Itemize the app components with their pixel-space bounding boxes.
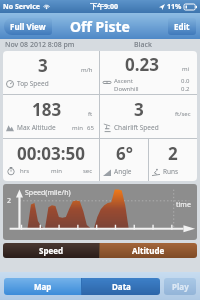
button[interactable]: Data: [82, 278, 160, 295]
button[interactable]: 0.23: [100, 51, 197, 94]
staticText: sec: [83, 167, 93, 175]
staticText: 3: [38, 54, 48, 77]
staticText: Altitude: [132, 245, 165, 256]
staticText: 0.23: [125, 53, 159, 76]
button[interactable]: Play: [164, 278, 196, 295]
staticText: 0.0: [181, 77, 190, 85]
staticText: min: [72, 124, 83, 132]
staticText: time: [176, 200, 191, 210]
staticText: Data: [112, 281, 131, 292]
staticText: Play: [172, 281, 189, 292]
staticText: Top Speed: [17, 79, 49, 88]
staticText: 0.2: [181, 85, 190, 93]
staticText: mi: [182, 65, 190, 73]
staticText: m/h: [81, 66, 93, 74]
staticText: 下午9:00: [90, 2, 118, 12]
staticText: Off Piste: [70, 17, 130, 36]
staticText: Downhill: [114, 85, 139, 93]
staticText: Nov 08 2012 8:08 pm: [5, 40, 75, 50]
button[interactable]: Full View: [4, 18, 52, 35]
staticText: Runs: [163, 167, 179, 176]
staticText: No Service: [3, 2, 40, 12]
staticText: Speed(mile/h): [25, 188, 71, 198]
staticText: 65: [87, 124, 94, 132]
staticText: Black: [134, 40, 152, 50]
staticText: ft: [88, 110, 93, 118]
button[interactable]: Map: [4, 278, 81, 295]
staticText: ft/sec: [175, 110, 191, 118]
staticText: Map: [34, 281, 52, 292]
staticText: Max Altitude: [17, 123, 56, 132]
staticText: 183: [32, 98, 62, 121]
staticText: 6°: [116, 142, 133, 165]
staticText: hrs: [20, 167, 30, 175]
staticText: Full View: [10, 21, 46, 32]
button[interactable]: 2: [149, 139, 197, 181]
staticText: 00:03:50: [17, 142, 85, 165]
staticText: 2: [7, 196, 12, 206]
button[interactable]: Speed: [3, 243, 99, 258]
staticText: 11%: [167, 2, 182, 12]
button[interactable]: Altitude: [100, 243, 197, 258]
staticText: Ascent: [114, 77, 133, 85]
button[interactable]: 3: [100, 95, 197, 138]
staticText: Speed: [39, 245, 64, 256]
staticText: Angle: [114, 167, 132, 176]
button[interactable]: Edit: [168, 18, 196, 35]
button[interactable]: 183: [3, 95, 99, 138]
staticText: 3: [134, 98, 144, 121]
button[interactable]: 00:03:50: [3, 139, 99, 181]
staticText: min: [51, 167, 62, 175]
button[interactable]: 6°: [100, 139, 148, 181]
staticText: Edit: [174, 21, 190, 32]
button[interactable]: 3: [3, 51, 99, 94]
staticText: Chairlift Speed: [114, 123, 159, 132]
staticText: 2: [168, 142, 178, 165]
